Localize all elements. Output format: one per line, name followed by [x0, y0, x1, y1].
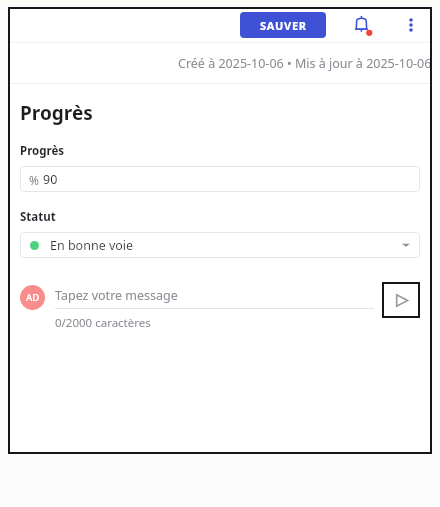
button[interactable]: More options	[396, 10, 426, 40]
staticText: Statut	[20, 209, 56, 225]
staticText: Tapez votre message	[55, 287, 178, 304]
staticText: %	[29, 172, 39, 188]
staticText: 90	[43, 171, 58, 188]
staticText: Progrès	[20, 100, 93, 126]
button[interactable]: Send	[382, 282, 420, 318]
staticText: Créé à 2025-10-06 • Mis à jour à 2025-10…	[178, 55, 432, 72]
button[interactable]: Tapez votre message	[55, 282, 374, 308]
staticText: En bonne voie	[50, 237, 134, 254]
staticText: AD	[26, 291, 40, 304]
button[interactable]: En bonne voie	[20, 232, 420, 258]
button[interactable]: Notifications	[346, 8, 380, 42]
staticText: SAUVER	[260, 18, 307, 33]
staticText: Progrès	[20, 143, 65, 159]
button[interactable]: %	[20, 166, 420, 192]
staticText: 0/2000 caractères	[55, 315, 151, 331]
button[interactable]: SAUVER	[240, 12, 326, 38]
